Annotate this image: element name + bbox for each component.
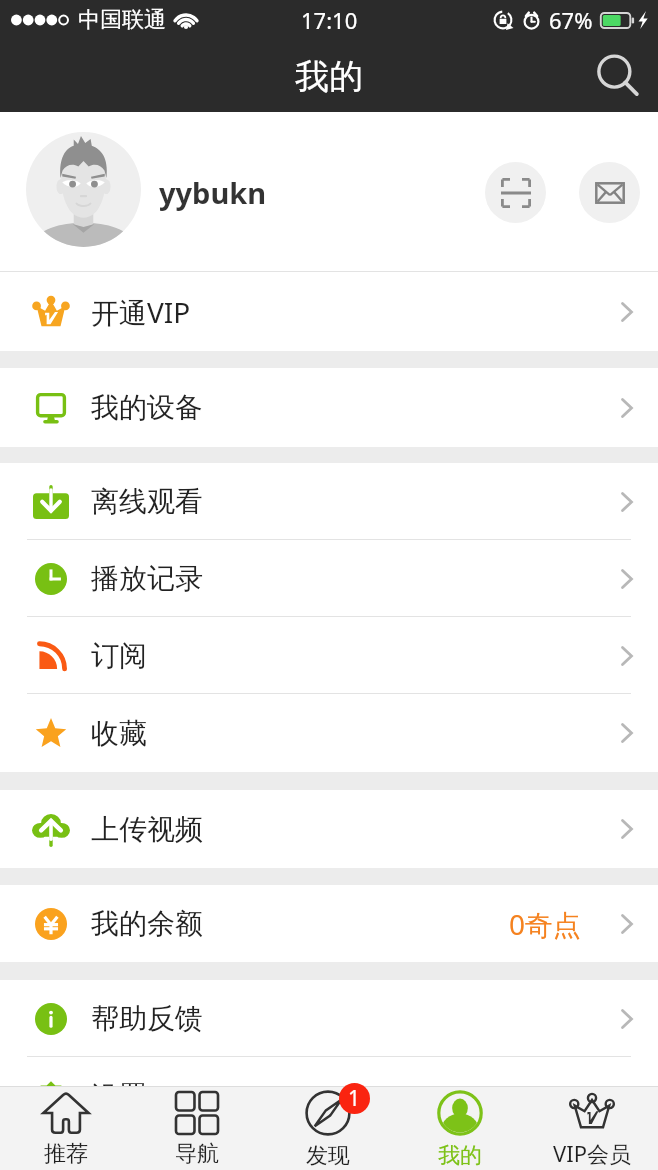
staticText: 离线观看 — [91, 484, 203, 519]
staticText: 发现 — [306, 1142, 350, 1170]
staticText: 推荐 — [44, 1140, 88, 1168]
button[interactable]: yybukn — [0, 112, 658, 272]
button[interactable]: 1 — [262, 1086, 394, 1170]
staticText: 0奇点 — [509, 905, 582, 943]
staticText: 我的 — [295, 55, 363, 98]
staticText: 设置 — [91, 1079, 147, 1114]
staticText: 1 — [348, 1084, 361, 1113]
button[interactable]: 导航 — [131, 1086, 262, 1170]
button[interactable]: 开通VIP — [0, 272, 658, 351]
staticText: 开通VIP — [91, 293, 191, 331]
staticText: 上传视频 — [91, 812, 203, 847]
button[interactable]: 上传视频 — [0, 790, 658, 868]
staticText: 我的设备 — [91, 390, 203, 425]
staticText: 收藏 — [91, 716, 147, 751]
button[interactable]: 收藏 — [0, 694, 658, 772]
button[interactable]: Scan QR — [485, 162, 546, 223]
staticText: 中国联通 — [78, 6, 166, 34]
button[interactable]: 订阅 — [0, 617, 658, 694]
staticText: 订阅 — [91, 638, 147, 673]
staticText: 67% — [549, 5, 593, 35]
button[interactable]: Messages — [579, 162, 640, 223]
button[interactable]: Search — [587, 46, 647, 106]
staticText: 我的 — [438, 1142, 482, 1170]
button[interactable]: 离线观看 — [0, 463, 658, 540]
staticText: 播放记录 — [91, 561, 203, 596]
button[interactable]: 设置 — [0, 1057, 658, 1135]
staticText: 帮助反馈 — [91, 1001, 203, 1036]
staticText: 我的余额 — [91, 906, 203, 941]
staticText: 导航 — [175, 1140, 219, 1168]
staticText: 17:10 — [301, 5, 358, 35]
button[interactable]: 帮助反馈 — [0, 980, 658, 1057]
staticText: yybukn — [159, 173, 267, 212]
button[interactable]: 我的 — [394, 1086, 526, 1170]
button[interactable]: VIP会员 — [526, 1086, 658, 1170]
button[interactable]: 我的设备 — [0, 368, 658, 447]
button[interactable]: 播放记录 — [0, 540, 658, 617]
staticText: VIP会员 — [553, 1138, 631, 1168]
button[interactable]: 推荐 — [0, 1086, 131, 1170]
button[interactable]: 我的余额 — [0, 885, 658, 962]
